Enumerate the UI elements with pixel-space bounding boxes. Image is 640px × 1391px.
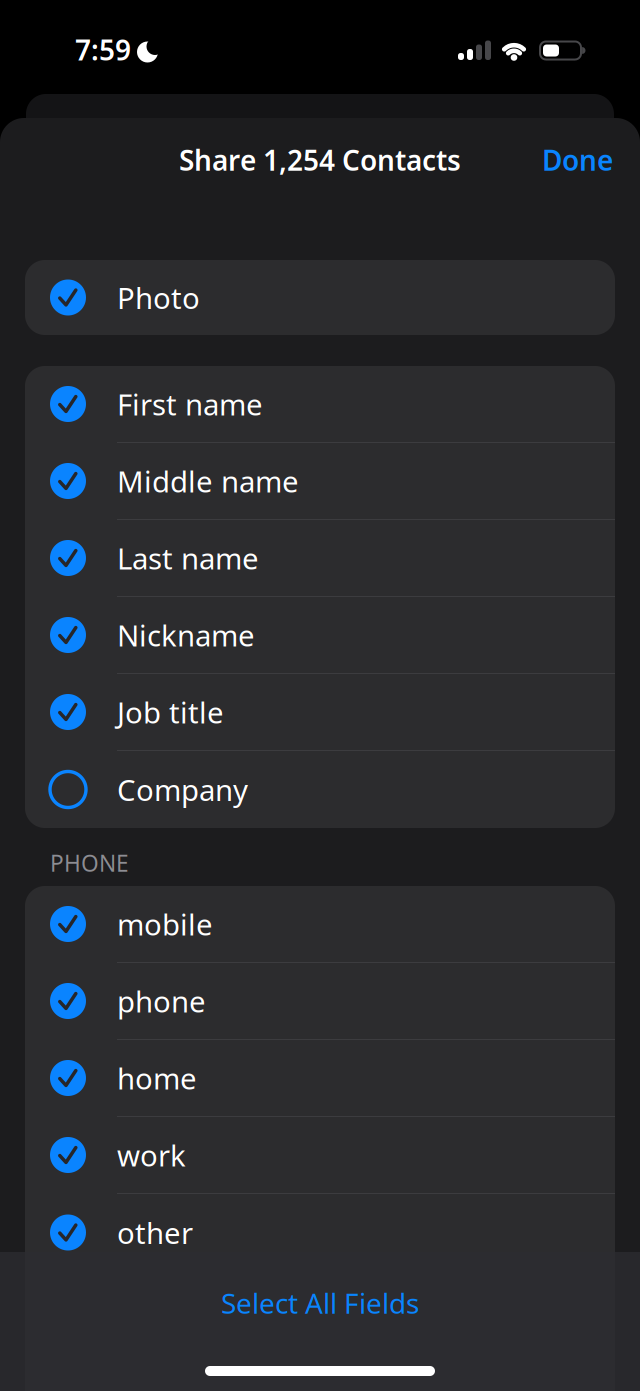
button[interactable]: phone xyxy=(25,963,615,1040)
staticText: mobile xyxy=(117,904,213,943)
button[interactable]: other xyxy=(25,1194,615,1271)
staticText: Photo xyxy=(117,278,200,317)
staticText: phone xyxy=(117,981,206,1020)
button[interactable]: Select All Fields xyxy=(0,1283,640,1323)
button[interactable]: Company xyxy=(25,751,615,828)
staticText: 7:59 xyxy=(75,31,131,68)
button[interactable]: Nickname xyxy=(25,597,615,674)
staticText: Done xyxy=(542,141,613,179)
button[interactable]: Last name xyxy=(25,520,615,597)
button[interactable]: Job title xyxy=(25,674,615,751)
button[interactable]: mobile xyxy=(25,886,615,963)
staticText: PHONE xyxy=(50,848,129,878)
staticText: Share 1,254 Contacts xyxy=(179,141,461,179)
staticText: home xyxy=(117,1058,197,1097)
staticText: Job title xyxy=(117,692,224,731)
button[interactable]: First name xyxy=(25,366,615,443)
staticText: Select All Fields xyxy=(221,1284,419,1322)
button[interactable]: home xyxy=(25,1040,615,1117)
button[interactable]: work xyxy=(25,1117,615,1194)
staticText: Middle name xyxy=(117,461,299,500)
staticText: Last name xyxy=(117,538,259,577)
button[interactable]: Middle name xyxy=(25,443,615,520)
button[interactable]: Done xyxy=(542,141,613,179)
button[interactable]: Photo xyxy=(25,260,615,335)
staticText: work xyxy=(117,1135,186,1174)
staticText: Company xyxy=(117,770,248,809)
staticText: other xyxy=(117,1213,193,1252)
staticText: First name xyxy=(117,384,263,423)
staticText: Nickname xyxy=(117,615,255,654)
